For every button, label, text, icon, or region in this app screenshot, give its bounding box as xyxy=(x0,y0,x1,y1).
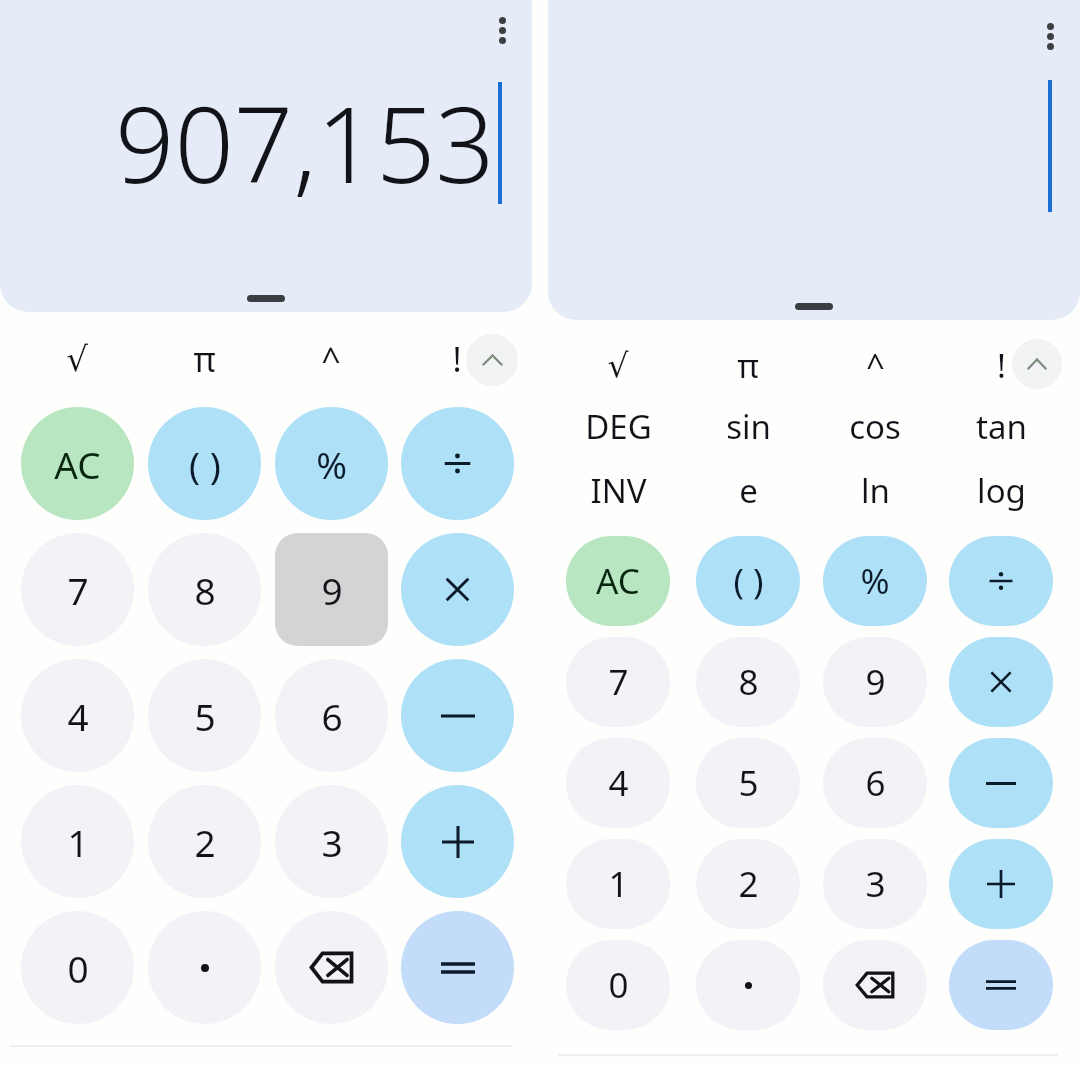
staticText: ! xyxy=(997,343,1006,388)
button[interactable]: ^ xyxy=(823,336,927,394)
staticText: 9 xyxy=(321,565,343,615)
button[interactable]: tan xyxy=(949,394,1053,458)
staticText: √ xyxy=(607,346,629,384)
button[interactable]: 1 xyxy=(21,785,134,898)
button[interactable]: π xyxy=(152,328,256,390)
staticText: ( ) xyxy=(189,439,221,489)
button[interactable]: Subtract xyxy=(401,659,514,772)
staticText: cos xyxy=(849,404,901,449)
button[interactable]: 3 xyxy=(823,839,927,929)
staticText: 6 xyxy=(865,759,886,807)
button[interactable]: 1 xyxy=(566,839,670,929)
button[interactable]: ! xyxy=(405,328,509,390)
button[interactable]: Drag handle xyxy=(795,303,833,310)
button[interactable]: Backspace xyxy=(275,911,388,1024)
staticText: 3 xyxy=(865,860,886,908)
button[interactable]: 2 xyxy=(696,839,800,929)
button[interactable]: 8 xyxy=(148,533,261,646)
button[interactable]: Collapse keypad xyxy=(466,334,518,386)
staticText: 3 xyxy=(321,817,343,867)
staticText: ^ xyxy=(321,336,341,382)
button[interactable]: 4 xyxy=(21,659,134,772)
button[interactable]: 0 xyxy=(566,940,670,1030)
staticText: ^ xyxy=(866,343,885,388)
button[interactable]: AC xyxy=(21,407,134,520)
button[interactable]: More options xyxy=(1028,14,1072,58)
staticText: 1 xyxy=(608,860,629,908)
button[interactable]: ! xyxy=(949,336,1053,394)
button[interactable]: 9 xyxy=(823,637,927,727)
button[interactable]: √ xyxy=(566,336,670,394)
button[interactable]: Equals xyxy=(401,911,514,1024)
button[interactable]: Multiply xyxy=(949,637,1053,727)
button[interactable]: 5 xyxy=(696,738,800,828)
staticText: % xyxy=(316,439,347,489)
staticText: log xyxy=(977,468,1026,513)
button[interactable]: 6 xyxy=(275,659,388,772)
staticText: ! xyxy=(452,336,462,382)
staticText: ( ) xyxy=(733,557,764,605)
button[interactable]: Subtract xyxy=(949,738,1053,828)
staticText: e xyxy=(739,468,758,513)
button[interactable]: ln xyxy=(823,458,927,522)
button[interactable]: 3 xyxy=(275,785,388,898)
button[interactable]: Drag handle xyxy=(247,295,285,302)
staticText: INV xyxy=(590,468,647,513)
staticText: tan xyxy=(976,404,1027,449)
staticText: DEG xyxy=(585,404,652,449)
button[interactable]: Divide xyxy=(401,407,514,520)
button[interactable]: % xyxy=(823,536,927,626)
staticText: 6 xyxy=(321,691,343,741)
button[interactable]: 7 xyxy=(21,533,134,646)
button[interactable]: log xyxy=(949,458,1053,522)
button[interactable]: Add xyxy=(401,785,514,898)
button[interactable]: DEG xyxy=(566,394,670,458)
staticText: 9 xyxy=(865,658,886,706)
button[interactable]: ( ) xyxy=(148,407,261,520)
button[interactable]: Divide xyxy=(949,536,1053,626)
button[interactable]: π xyxy=(696,336,800,394)
staticText: √ xyxy=(66,339,88,379)
button[interactable]: AC xyxy=(566,536,670,626)
staticText: 0 xyxy=(608,961,629,1009)
button[interactable]: 9 xyxy=(275,533,388,646)
button[interactable]: Decimal point xyxy=(696,940,800,1030)
button[interactable]: INV xyxy=(566,458,670,522)
button[interactable]: % xyxy=(275,407,388,520)
button[interactable]: sin xyxy=(696,394,800,458)
staticText: π xyxy=(193,336,216,382)
button[interactable]: Backspace xyxy=(823,940,927,1030)
staticText: AC xyxy=(54,439,101,489)
button[interactable]: 5 xyxy=(148,659,261,772)
button[interactable]: e xyxy=(696,458,800,522)
staticText: π xyxy=(737,343,759,388)
button[interactable]: cos xyxy=(823,394,927,458)
button[interactable]: 0 xyxy=(21,911,134,1024)
staticText: 5 xyxy=(194,691,216,741)
button[interactable]: ^ xyxy=(279,328,383,390)
button[interactable]: Multiply xyxy=(401,533,514,646)
button[interactable]: 6 xyxy=(823,738,927,828)
staticText: 4 xyxy=(608,759,629,807)
staticText: 2 xyxy=(738,860,759,908)
staticText: 7 xyxy=(67,565,89,615)
button[interactable]: Equals xyxy=(949,940,1053,1030)
button[interactable]: Add xyxy=(949,839,1053,929)
button[interactable]: ( ) xyxy=(696,536,800,626)
button[interactable]: 7 xyxy=(566,637,670,727)
staticText: 8 xyxy=(738,658,759,706)
staticText: 5 xyxy=(738,759,759,807)
button[interactable]: √ xyxy=(25,328,129,390)
staticText: sin xyxy=(726,404,771,449)
staticText: AC xyxy=(596,557,640,605)
staticText: 7 xyxy=(608,658,629,706)
staticText: 907,153 xyxy=(115,72,495,214)
staticText: 8 xyxy=(194,565,216,615)
button[interactable]: 8 xyxy=(696,637,800,727)
button[interactable]: 4 xyxy=(566,738,670,828)
button[interactable]: Decimal point xyxy=(148,911,261,1024)
button[interactable]: Collapse keypad xyxy=(1012,339,1062,389)
button[interactable]: More options xyxy=(480,8,524,52)
button[interactable]: 2 xyxy=(148,785,261,898)
staticText: ln xyxy=(861,468,890,513)
